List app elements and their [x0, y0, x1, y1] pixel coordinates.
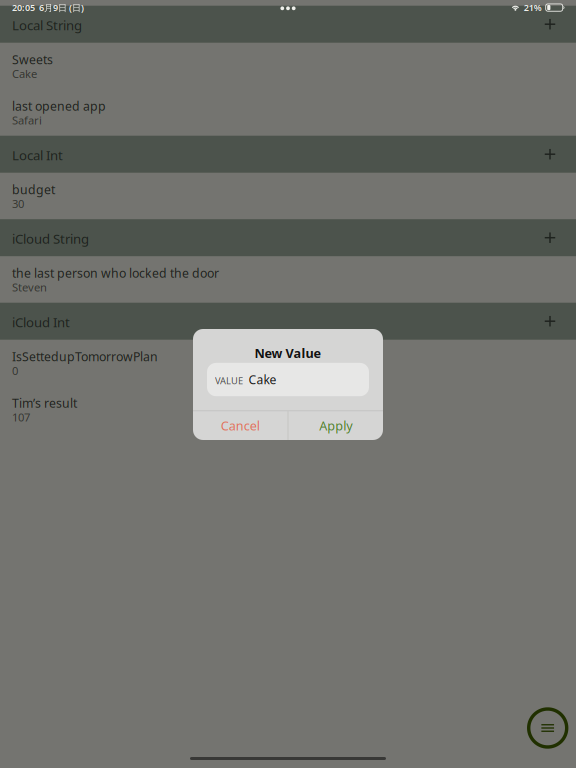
staticText: Sweets: [12, 51, 53, 68]
staticText: IsSettedupTomorrowPlan: [12, 348, 158, 365]
button[interactable]: Apply: [288, 411, 383, 440]
staticText: VALUE: [215, 374, 243, 387]
button[interactable]: Add to Local Int: [535, 139, 565, 169]
staticText: Cake: [248, 371, 276, 388]
button[interactable]: budget: [0, 173, 576, 219]
button[interactable]: Add to iCloud Int: [535, 306, 565, 336]
staticText: iCloud String: [12, 230, 89, 248]
staticText: Local Int: [12, 146, 63, 164]
button[interactable]: Cancel: [193, 411, 288, 440]
staticText: Tim’s result: [12, 395, 77, 411]
staticText: the last person who locked the door: [12, 265, 219, 281]
staticText: Cake: [12, 66, 37, 81]
button[interactable]: the last person who locked the door: [0, 256, 576, 303]
staticText: Safari: [12, 112, 42, 128]
staticText: iCloud Int: [12, 313, 70, 331]
button[interactable]: IsSettedupTomorrowPlan: [0, 340, 576, 386]
staticText: Apply: [319, 417, 352, 434]
staticText: 21%: [524, 1, 542, 14]
staticText: 20:05 6月9日 (日): [12, 1, 84, 14]
staticText: 107: [12, 409, 30, 425]
button[interactable]: Sweets: [0, 43, 576, 89]
staticText: New Value: [254, 344, 321, 362]
button[interactable]: Tim’s result: [0, 386, 576, 433]
staticText: budget: [12, 181, 55, 198]
staticText: last opened app: [12, 98, 106, 114]
staticText: Steven: [12, 279, 47, 295]
button[interactable]: Add to iCloud String: [535, 223, 565, 253]
button[interactable]: last opened app: [0, 89, 576, 136]
button[interactable]: Add to Local String: [535, 9, 565, 39]
staticText: Cancel: [221, 417, 260, 434]
staticText: 30: [12, 196, 24, 211]
staticText: Local String: [12, 16, 82, 34]
staticText: 0: [12, 363, 18, 378]
button[interactable]: Menu: [529, 709, 567, 747]
